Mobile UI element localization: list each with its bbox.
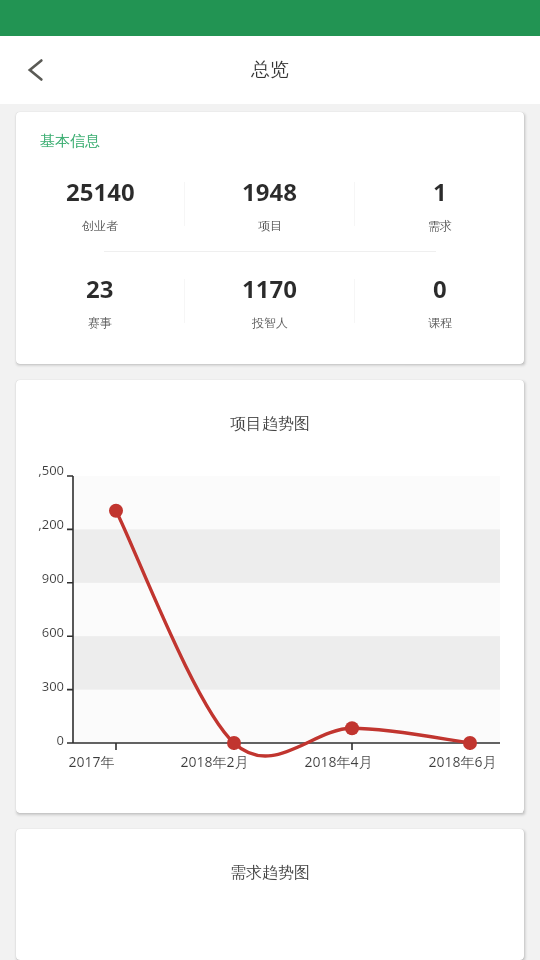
staticText: 1948 xyxy=(242,175,297,208)
staticText: 项目 xyxy=(258,218,282,233)
button[interactable]: 基本信息 xyxy=(16,112,524,364)
staticText: 1170 xyxy=(242,272,297,305)
button[interactable]: Back xyxy=(10,46,58,94)
staticText: 基本信息 xyxy=(40,132,100,151)
button[interactable]: 1948 xyxy=(185,173,354,235)
button[interactable]: 23 xyxy=(16,270,184,332)
staticText: 2018年6月 xyxy=(428,752,497,771)
staticText: 300 xyxy=(41,677,64,695)
staticText: 创业者 xyxy=(82,218,118,233)
staticText: 赛事 xyxy=(88,315,112,330)
staticText: ,500 xyxy=(38,461,64,479)
button[interactable]: 25140 xyxy=(16,173,184,235)
staticText: 600 xyxy=(41,623,64,641)
staticText: ,200 xyxy=(38,515,64,533)
staticText: 课程 xyxy=(428,315,452,330)
staticText: 需求 xyxy=(428,218,452,233)
button[interactable]: 项目趋势图 xyxy=(16,380,524,813)
button[interactable]: 需求趋势图 xyxy=(16,829,524,960)
staticText: 项目趋势图 xyxy=(230,414,310,434)
button[interactable]: 1 xyxy=(355,173,524,235)
staticText: 2018年2月 xyxy=(180,752,249,771)
staticText: 0 xyxy=(56,731,64,749)
staticText: 2018年4月 xyxy=(304,752,373,771)
staticText: 1 xyxy=(433,175,447,208)
staticText: 900 xyxy=(41,569,64,587)
button[interactable]: 0 xyxy=(355,270,524,332)
staticText: 投智人 xyxy=(252,315,288,330)
staticText: 需求趋势图 xyxy=(230,863,310,883)
staticText: 2017年 xyxy=(68,752,115,771)
staticText: 25140 xyxy=(66,175,135,208)
staticText: 0 xyxy=(433,272,447,305)
staticText: 23 xyxy=(86,272,114,305)
button[interactable]: 1170 xyxy=(185,270,354,332)
staticText: 总览 xyxy=(251,58,289,82)
